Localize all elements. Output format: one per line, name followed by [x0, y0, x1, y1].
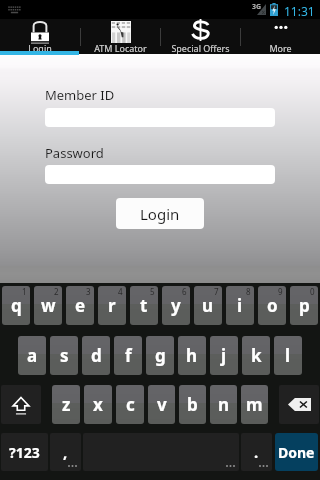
staticText: n	[218, 393, 230, 416]
staticText: w	[41, 294, 56, 317]
staticText: 8	[246, 286, 251, 297]
staticText: j	[221, 344, 227, 367]
staticText: 4	[118, 286, 123, 297]
staticText: r	[108, 294, 116, 317]
staticText: 11:31	[284, 3, 315, 19]
staticText: t	[140, 294, 148, 317]
staticText: s	[60, 344, 69, 367]
button[interactable]: h	[178, 336, 206, 375]
button[interactable]: g	[146, 336, 174, 375]
button[interactable]: j	[210, 336, 238, 375]
staticText: 0	[310, 286, 315, 297]
staticText: p	[299, 294, 310, 317]
staticText: 3	[86, 286, 91, 297]
button[interactable]: n	[210, 385, 237, 424]
staticText: c	[126, 393, 135, 416]
button[interactable]: Backspace	[279, 385, 319, 424]
button[interactable]: m	[241, 385, 268, 424]
staticText: Login	[28, 42, 52, 54]
button[interactable]: 5	[130, 286, 158, 325]
staticText: 7	[214, 286, 219, 297]
staticText: f	[125, 344, 132, 367]
staticText: q	[11, 294, 22, 317]
staticText: ATM Locator	[94, 42, 147, 54]
staticText: b	[187, 393, 198, 416]
button[interactable]: s	[50, 336, 78, 375]
staticText: Member ID	[45, 86, 115, 104]
button[interactable]: 2	[34, 286, 62, 325]
staticText: ?123	[9, 443, 40, 462]
button[interactable]: d	[82, 336, 110, 375]
button[interactable]: x	[84, 385, 112, 424]
button[interactable]: b	[179, 385, 206, 424]
staticText: k	[251, 344, 262, 367]
staticText: l	[285, 344, 291, 367]
staticText: y	[171, 294, 181, 317]
staticText: Password	[45, 144, 104, 162]
staticText: More	[269, 42, 292, 54]
button[interactable]: z	[52, 385, 80, 424]
staticText: 6	[182, 286, 187, 297]
button[interactable]: 0	[290, 286, 318, 325]
button[interactable]	[83, 433, 239, 471]
button[interactable]: k	[242, 336, 270, 375]
staticText: h	[186, 344, 198, 367]
button[interactable]: More	[241, 19, 320, 54]
button[interactable]: c	[116, 385, 144, 424]
staticText: e	[75, 294, 86, 317]
staticText: a	[27, 344, 38, 367]
button[interactable]: 7	[194, 286, 222, 325]
staticText: u	[202, 294, 214, 317]
staticText: Login	[140, 204, 180, 224]
button[interactable]: 9	[258, 286, 286, 325]
button[interactable]: v	[148, 385, 175, 424]
staticText: x	[93, 393, 103, 416]
staticText: m	[246, 393, 263, 416]
button[interactable]: Login	[116, 198, 204, 229]
button[interactable]: 8	[226, 286, 254, 325]
button[interactable]: Shift	[1, 385, 41, 424]
button[interactable]: 4	[98, 286, 126, 325]
button[interactable]: 6	[162, 286, 190, 325]
staticText: 2	[54, 286, 59, 297]
staticText: 3G	[252, 2, 262, 12]
staticText: z	[62, 393, 71, 416]
button[interactable]: ATM Locator	[81, 19, 160, 54]
staticText: i	[237, 294, 243, 317]
staticText: Done	[278, 443, 315, 462]
button[interactable]: 3	[66, 286, 94, 325]
staticText: ,	[63, 442, 68, 462]
button[interactable]: ,	[50, 433, 81, 471]
staticText: .	[254, 442, 259, 462]
button[interactable]: Login	[0, 19, 80, 54]
button[interactable]: 1	[2, 286, 30, 325]
button[interactable]: l	[274, 336, 302, 375]
staticText: v	[157, 393, 167, 416]
button[interactable]: ?123	[1, 433, 48, 471]
button[interactable]: Done	[275, 433, 318, 471]
staticText: d	[91, 344, 102, 367]
button[interactable]: a	[18, 336, 46, 375]
staticText: o	[267, 294, 278, 317]
staticText: 1	[22, 286, 27, 297]
staticText: 9	[278, 286, 283, 297]
staticText: g	[155, 344, 166, 367]
staticText: Special Offers	[171, 42, 230, 54]
button[interactable]: .	[241, 433, 272, 471]
button[interactable]: f	[114, 336, 142, 375]
staticText: 5	[150, 286, 155, 297]
button[interactable]: Special Offers	[161, 19, 240, 54]
